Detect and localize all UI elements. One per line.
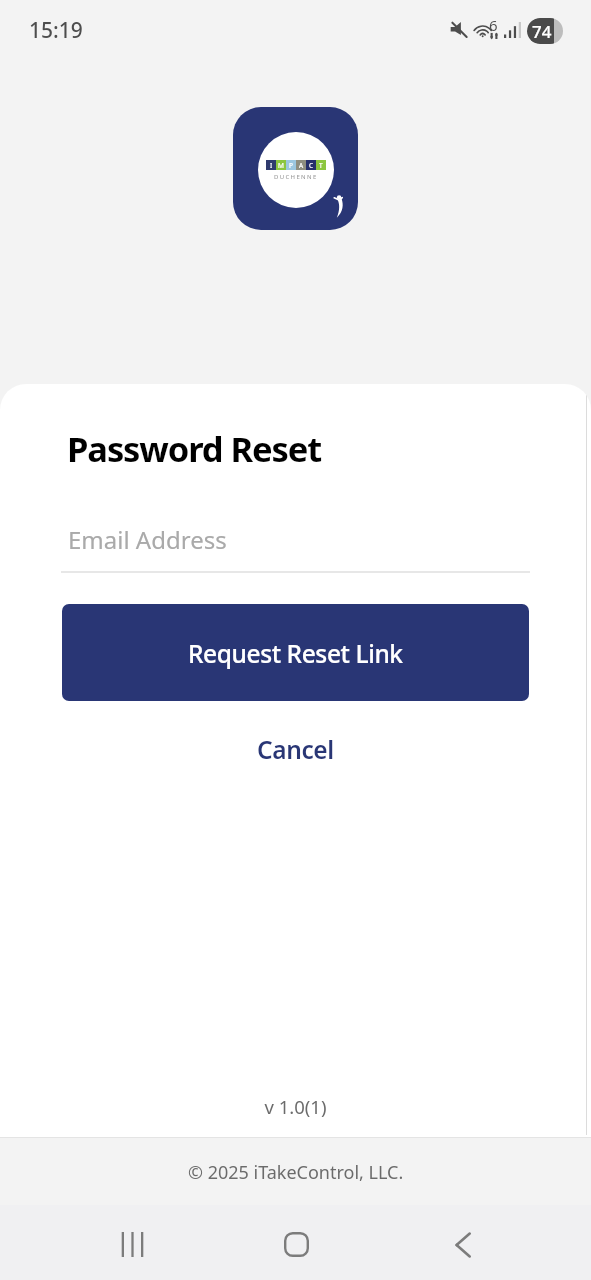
button[interactable]: Recent apps [66,1207,198,1280]
staticText: 74 [532,20,552,43]
staticText: A [299,161,304,170]
button[interactable]: Home [230,1207,362,1280]
staticText: Email Address [68,523,227,556]
button[interactable]: Email Address [61,512,530,575]
staticText: M [278,161,284,170]
button[interactable]: Request Reset Link [62,604,529,701]
staticText: 6 [489,15,498,35]
staticText: Cancel [257,733,334,766]
staticText: 15:19 [29,16,83,45]
staticText: Request Reset Link [188,637,403,670]
staticText: Password Reset [67,425,322,472]
staticText: v 1.0(1) [0,1094,591,1119]
staticText: T [319,161,323,170]
staticText: I [270,161,273,170]
button[interactable]: Cancel [62,719,529,779]
staticText: DUCHENNE [274,173,318,181]
staticText: C [309,161,314,170]
staticText: P [289,161,293,170]
button[interactable]: Back [397,1207,529,1280]
staticText: © 2025 iTakeControl, LLC. [188,1160,404,1185]
